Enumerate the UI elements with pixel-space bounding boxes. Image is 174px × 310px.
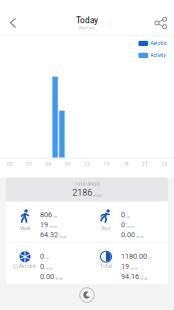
staticText: 94.16 (121, 272, 139, 281)
staticText: 12 (84, 161, 90, 167)
staticText: Not Sync (79, 25, 95, 30)
staticText: min (49, 224, 56, 229)
staticText: 06 (45, 161, 51, 167)
staticText: 03 (26, 161, 32, 167)
staticText: m (45, 256, 49, 261)
staticText: 0.00 (40, 272, 54, 281)
staticText: 09 (65, 161, 71, 167)
staticText: min (130, 266, 137, 271)
staticText: 2186 (72, 187, 92, 198)
staticText: 806 (40, 210, 52, 219)
staticText: Walk (20, 226, 30, 231)
staticText: Total steps (74, 181, 99, 187)
staticText: 0 (121, 210, 125, 219)
button[interactable]: Aerobic (6, 243, 87, 284)
button[interactable]: Walk (6, 201, 87, 242)
staticText: Total (100, 263, 112, 269)
staticText: 21 (142, 161, 148, 167)
staticText: 0 (40, 262, 44, 271)
staticText: 1180.00 (121, 252, 147, 261)
staticText: kcal (136, 234, 143, 239)
button[interactable]: Run (87, 201, 168, 242)
staticText: 64.32 (40, 231, 58, 239)
staticText: Aerobic (19, 263, 37, 269)
staticText: 19 (121, 262, 129, 271)
staticText: kcal (59, 234, 66, 239)
staticText: Activity (150, 53, 165, 58)
staticText: 0.00 (121, 231, 135, 239)
staticText: 19 (40, 220, 48, 229)
staticText: kcal (55, 276, 62, 281)
staticText: 0 (40, 252, 44, 261)
button[interactable]: Sleep (79, 287, 95, 303)
staticText: 24 (161, 161, 167, 167)
staticText: m (126, 214, 130, 219)
staticText: Today (76, 16, 98, 25)
staticText: 0 (121, 220, 125, 229)
button[interactable]: Share (148, 11, 174, 35)
staticText: kcal (140, 276, 147, 281)
button[interactable]: Back (0, 11, 26, 35)
staticText: 15 (103, 161, 109, 167)
staticText: m (148, 256, 152, 261)
staticText: steps (93, 193, 102, 198)
staticText: Aerobic (150, 41, 166, 46)
button[interactable]: Total (87, 243, 168, 284)
staticText: 00 (7, 161, 13, 167)
staticText: m (53, 214, 57, 219)
staticText: min (45, 266, 52, 271)
staticText: min (126, 224, 133, 229)
staticText: Run (101, 226, 110, 231)
staticText: 18 (123, 161, 129, 167)
